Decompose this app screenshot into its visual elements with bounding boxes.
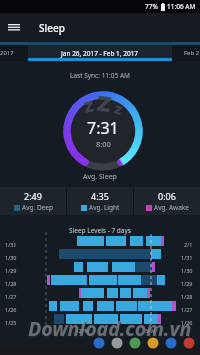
staticText: Feb 2: [184, 49, 200, 57]
staticText: 2017: [0, 49, 14, 57]
button[interactable]: 4:35: [67, 187, 133, 215]
staticText: 8:00: [96, 139, 111, 149]
button[interactable]: Jan 26, 2017 - Feb 1, 2017: [28, 45, 172, 61]
staticText: Avg. Sleep: [83, 172, 117, 182]
staticText: 1/29: [5, 267, 17, 274]
staticText: 1/31: [181, 254, 193, 261]
staticText: 1/27: [5, 293, 17, 300]
staticText: Sleep Levels - 7 days: [69, 226, 131, 235]
staticText: Download.com.vn: [28, 315, 192, 342]
staticText: 1/29: [181, 280, 193, 287]
staticText: 4:35: [91, 190, 109, 202]
staticText: 6AM: [145, 328, 156, 335]
button[interactable]: [0, 13, 27, 42]
staticText: Download.com.vn: [29, 316, 193, 343]
staticText: Sleep: [39, 21, 65, 35]
staticText: Avg. Deep: [22, 203, 53, 212]
button[interactable]: 2:49: [0, 187, 66, 215]
button[interactable]: 2017: [0, 45, 28, 61]
staticText: 1/30: [5, 254, 17, 261]
staticText: Avg. Awake: [154, 203, 189, 212]
staticText: 1/30: [181, 267, 193, 274]
staticText: Jan 26, 2017 - Feb 1, 2017: [61, 49, 139, 58]
staticText: 1/31: [5, 241, 17, 248]
staticText: 0:06: [158, 190, 176, 202]
staticText: 1/25: [5, 319, 17, 326]
staticText: 1/27: [181, 306, 193, 313]
staticText: Avg. Light: [89, 203, 120, 212]
staticText: 2/1: [184, 241, 193, 248]
button[interactable]: 0:06: [134, 187, 200, 215]
staticText: 7:31: [87, 117, 119, 139]
staticText: Last Sync: 11:05 AM: [70, 71, 131, 80]
staticText: 1/26: [181, 319, 193, 326]
staticText: 1/28: [181, 293, 193, 300]
staticText: 1/28: [5, 280, 17, 287]
staticText: 11:06 AM: [167, 2, 196, 11]
staticText: 2:49: [24, 190, 42, 202]
staticText: 1/26: [5, 306, 17, 313]
staticText: 12PM: [76, 328, 90, 335]
staticText: 77%: [145, 2, 158, 11]
button[interactable]: Feb 2: [172, 45, 200, 61]
